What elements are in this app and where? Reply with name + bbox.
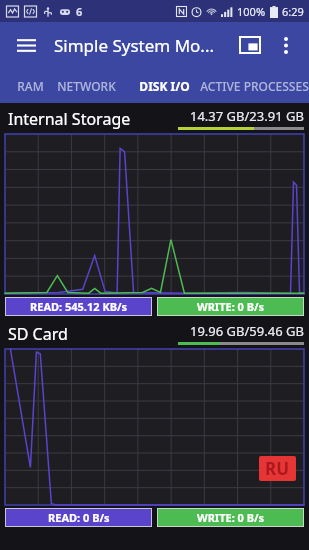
staticText: Simple System Mo... <box>54 34 231 57</box>
staticText: 14.37 GB/23.91 GB <box>190 107 304 125</box>
staticText: RU <box>265 457 290 480</box>
button[interactable]: READ: 545.12 KB/s <box>5 297 152 316</box>
staticText: 100% <box>237 4 266 19</box>
button[interactable]: RAM <box>0 68 44 103</box>
staticText: NETWORK <box>57 78 116 94</box>
staticText: RAM <box>17 78 44 94</box>
staticText: 19.96 GB/59.46 GB <box>190 322 304 340</box>
button[interactable]: Open navigation drawer <box>6 25 46 65</box>
staticText: SD Card <box>8 323 178 345</box>
staticText: READ: 0 B/s <box>48 510 110 525</box>
staticText: WRITE: 0 B/s <box>197 510 265 525</box>
staticText: READ: 545.12 KB/s <box>30 299 128 314</box>
button[interactable]: Picture in picture <box>231 26 269 64</box>
button[interactable]: Internal Storage <box>5 107 304 130</box>
staticText: Internal Storage <box>8 108 178 130</box>
button[interactable]: WRITE: 0 B/s <box>157 508 304 527</box>
button[interactable]: READ: 0 B/s <box>5 508 152 527</box>
button[interactable]: SD Card <box>5 322 304 345</box>
staticText: WRITE: 0 B/s <box>197 299 265 314</box>
staticText: ACTIVE PROCESSES <box>200 78 309 94</box>
staticText: 6 <box>76 4 83 19</box>
button[interactable]: ACTIVE PROCESSES <box>200 68 309 103</box>
button[interactable]: WRITE: 0 B/s <box>157 297 304 316</box>
button[interactable]: DISK I/O <box>128 68 200 103</box>
button[interactable]: NETWORK <box>44 68 128 103</box>
staticText: DISK I/O <box>139 78 190 94</box>
button[interactable]: More options <box>269 28 303 62</box>
staticText: 6:29 <box>282 4 304 19</box>
